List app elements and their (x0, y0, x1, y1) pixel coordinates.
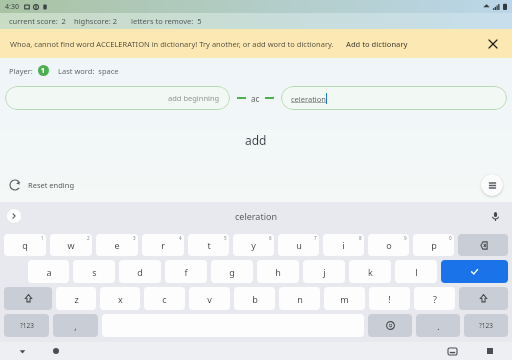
staticText: , (74, 320, 77, 332)
staticText: o (386, 239, 392, 251)
button[interactable]: d (119, 260, 161, 283)
button[interactable]: More suggestions (7, 209, 21, 223)
staticText: x (118, 293, 123, 305)
button[interactable]: a (28, 260, 69, 283)
staticText: 0 (449, 235, 452, 241)
button[interactable]: b (234, 287, 275, 310)
staticText: a (46, 266, 52, 278)
button[interactable]: Reset ending (7, 177, 78, 193)
button[interactable]: l (395, 260, 437, 283)
button[interactable]: Add to dictionary (344, 37, 410, 51)
staticText: 4:30 (5, 2, 19, 12)
button[interactable]: ? (414, 287, 455, 310)
staticText: m (340, 293, 349, 305)
button[interactable]: q (4, 234, 46, 256)
staticText: f (184, 266, 188, 278)
staticText: Last word: space (58, 66, 119, 76)
staticText: ?123 (20, 321, 34, 330)
button[interactable]: Shift (459, 287, 508, 310)
staticText: v (207, 293, 212, 305)
staticText: 6 (269, 235, 272, 241)
staticText: 5 (224, 235, 227, 241)
staticText: 4 (179, 235, 182, 241)
staticText: 7 (314, 235, 317, 241)
button[interactable]: t (188, 234, 229, 256)
button[interactable]: g (211, 260, 253, 283)
button[interactable]: Enter (441, 260, 508, 283)
button[interactable]: . (416, 314, 460, 337)
staticText: add beginning (168, 93, 220, 103)
button[interactable]: ?123 (4, 314, 49, 337)
button[interactable]: i (323, 234, 364, 256)
button[interactable]: r (142, 234, 184, 256)
button[interactable]: Emoji (368, 314, 412, 337)
button[interactable]: y (233, 234, 274, 256)
button[interactable]: ! (369, 287, 410, 310)
staticText: Player: (9, 66, 33, 76)
button[interactable]: Dismiss (484, 35, 502, 53)
staticText: letters to remove: 5 (131, 16, 202, 26)
button[interactable]: , (53, 314, 98, 337)
staticText: current score: 2 (9, 16, 66, 26)
staticText: s (92, 266, 97, 278)
button[interactable]: Shift (4, 287, 52, 310)
staticText: add (245, 132, 267, 148)
staticText: ?123 (479, 321, 493, 330)
button[interactable]: ?123 (464, 314, 508, 337)
button[interactable]: Hide keyboard (14, 343, 30, 359)
button[interactable]: v (189, 287, 230, 310)
button[interactable]: e (96, 234, 138, 256)
staticText: ! (388, 293, 391, 305)
button[interactable]: m (324, 287, 365, 310)
staticText: k (368, 266, 373, 278)
staticText: i (342, 239, 345, 251)
staticText: ac (251, 93, 260, 104)
button[interactable]: z (56, 287, 96, 310)
staticText: 2 (87, 235, 90, 241)
button[interactable]: celeration (235, 210, 277, 222)
staticText: Reset ending (28, 180, 75, 190)
button[interactable]: k (349, 260, 391, 283)
button[interactable]: Home (48, 343, 64, 359)
button[interactable]: celeration (281, 86, 507, 110)
button[interactable]: Recent apps (482, 343, 498, 359)
button[interactable]: c (144, 287, 185, 310)
staticText: . (437, 320, 440, 332)
staticText: y (251, 239, 256, 251)
staticText: 1 (41, 66, 46, 76)
staticText: w (67, 239, 75, 251)
button[interactable]: j (303, 260, 345, 283)
button[interactable]: Switch keyboard (444, 343, 460, 359)
staticText: h (275, 266, 281, 278)
staticText: c (162, 293, 167, 305)
button[interactable]: add (235, 129, 277, 151)
button[interactable]: u (278, 234, 319, 256)
button[interactable]: h (257, 260, 299, 283)
button[interactable]: w (50, 234, 92, 256)
button[interactable]: Backspace (458, 234, 508, 256)
staticText: n (297, 293, 303, 305)
button[interactable]: add beginning (5, 86, 230, 110)
button[interactable]: n (279, 287, 320, 310)
staticText: 3 (133, 235, 136, 241)
staticText: u (296, 239, 302, 251)
button[interactable]: f (165, 260, 207, 283)
staticText: ? (433, 293, 437, 305)
button[interactable]: o (368, 234, 409, 256)
button[interactable]: p (413, 234, 454, 256)
staticText: b (252, 293, 258, 305)
button[interactable]: s (73, 260, 115, 283)
button[interactable]: Voice input (488, 209, 502, 223)
staticText: d (137, 266, 143, 278)
staticText: celeration (291, 94, 326, 104)
staticText: e (114, 239, 120, 251)
staticText: z (74, 293, 79, 305)
staticText: r (161, 239, 165, 251)
staticText: t (207, 239, 211, 251)
staticText: q (22, 239, 28, 251)
staticText: Add to dictionary (346, 39, 408, 49)
staticText: p (431, 239, 437, 251)
button[interactable]: Menu (481, 174, 503, 196)
button[interactable]: x (100, 287, 140, 310)
